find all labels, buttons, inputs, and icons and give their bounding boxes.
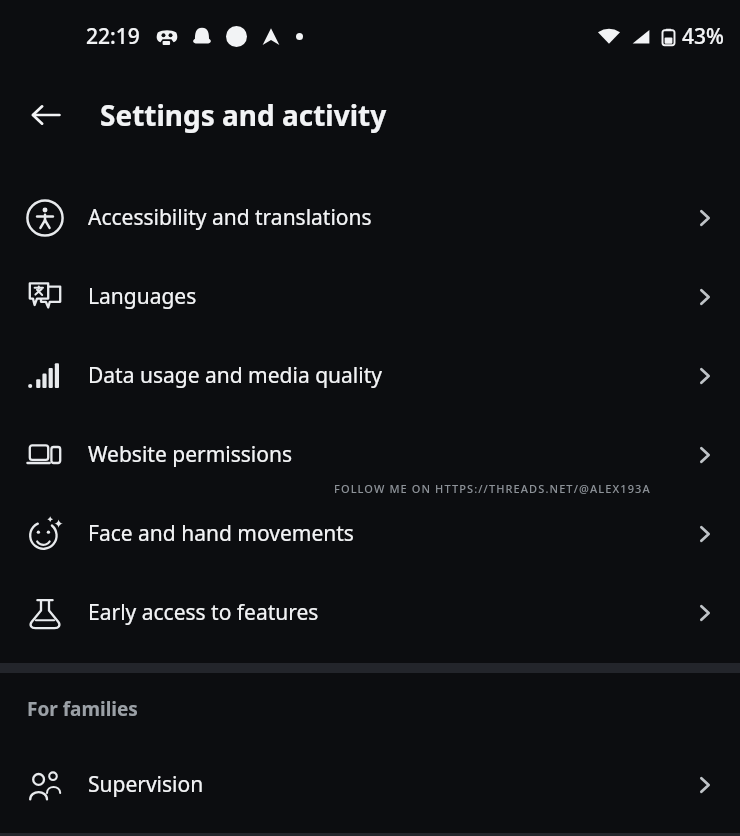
staticText: 43% [682, 22, 724, 51]
staticText: Languages [88, 282, 692, 311]
button[interactable]: Supervision [0, 745, 740, 824]
staticText: Website permissions [88, 440, 692, 469]
button[interactable]: Data usage and media quality [0, 336, 740, 415]
staticText: For families [27, 696, 138, 722]
button[interactable]: Website permissions [0, 415, 740, 494]
staticText: Settings and activity [100, 96, 387, 134]
button[interactable]: Accessibility and translations [0, 178, 740, 257]
button[interactable]: Early access to features [0, 573, 740, 652]
button[interactable]: Languages [0, 257, 740, 336]
button[interactable]: Back [20, 89, 72, 141]
staticText: Early access to features [88, 598, 692, 627]
staticText: Supervision [88, 770, 692, 799]
staticText: 22:19 [86, 22, 140, 51]
button[interactable]: Face and hand movements [0, 494, 740, 573]
staticText: Data usage and media quality [88, 361, 692, 390]
staticText: Face and hand movements [88, 519, 692, 548]
staticText: FOLLOW ME ON HTTPS://THREADS.NET/@ALEX19… [334, 481, 651, 496]
staticText: Accessibility and translations [88, 203, 692, 232]
